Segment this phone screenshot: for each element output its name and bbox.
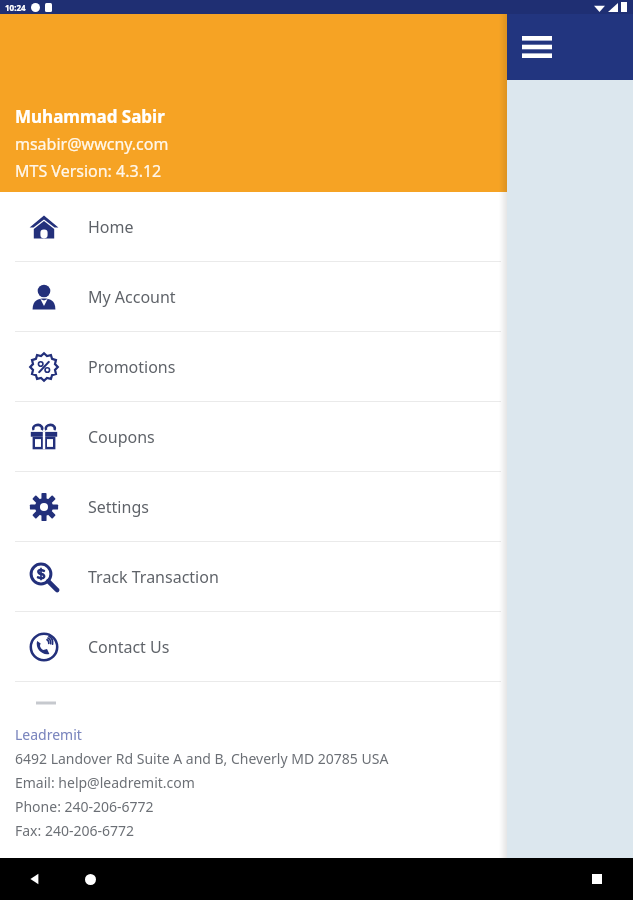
button[interactable]: Back: [26, 869, 46, 889]
staticText: Promotions: [88, 356, 176, 378]
staticText: Muhammad Sabir: [15, 105, 165, 128]
staticText: Contact Us: [88, 636, 170, 658]
button[interactable]: My Account: [0, 262, 507, 331]
staticText: msabir@wwcny.com: [15, 133, 169, 155]
button[interactable]: Promotions: [0, 332, 507, 401]
button[interactable]: Track Transaction: [0, 542, 507, 611]
button[interactable]: Home: [0, 192, 507, 261]
button[interactable]: Coupons: [0, 402, 507, 471]
staticText: 6492 Landover Rd Suite A and B, Cheverly…: [15, 749, 389, 768]
staticText: Settings: [88, 496, 149, 518]
button[interactable]: Open navigation menu: [514, 24, 560, 70]
staticText: Leadremit: [15, 725, 82, 744]
staticText: My Account: [88, 286, 176, 308]
staticText: Fax: 240-206-6772: [15, 821, 135, 840]
button[interactable]: Recents: [585, 867, 609, 891]
staticText: 10:24: [5, 2, 26, 13]
staticText: Phone: 240-206-6772: [15, 797, 154, 816]
staticText: Track Transaction: [88, 566, 219, 588]
button[interactable]: [0, 682, 507, 706]
button[interactable]: Contact Us: [0, 612, 507, 681]
button[interactable]: Home: [78, 867, 102, 891]
button[interactable]: Settings: [0, 472, 507, 541]
staticText: Home: [88, 216, 134, 238]
staticText: MTS Version: 4.3.12: [15, 160, 162, 182]
staticText: Email: help@leadremit.com: [15, 773, 195, 792]
staticText: Coupons: [88, 426, 155, 448]
